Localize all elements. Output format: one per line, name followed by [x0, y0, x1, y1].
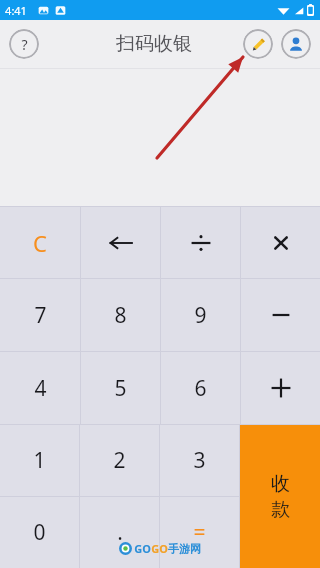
staticText: 4 [34, 374, 47, 403]
button[interactable]: Account [281, 29, 311, 59]
staticText: . [117, 518, 123, 547]
staticText: 0 [33, 518, 46, 547]
staticText: = [193, 518, 206, 547]
button[interactable]: . [80, 497, 159, 568]
staticText: C [33, 228, 47, 258]
button[interactable]: 8 [81, 279, 160, 351]
staticText: 扫码收银 [116, 32, 192, 56]
button[interactable]: Minus [241, 279, 320, 351]
button[interactable]: Edit [243, 29, 273, 59]
staticText: 收 款 [271, 472, 290, 522]
staticText: ? [21, 35, 28, 54]
button[interactable]: ? [9, 29, 39, 59]
staticText: 6 [194, 374, 207, 403]
button[interactable]: 3 [160, 425, 239, 496]
button[interactable]: 收 款 [240, 425, 320, 568]
button[interactable]: Divide [161, 207, 240, 278]
button[interactable]: 2 [80, 425, 159, 496]
staticText: 手游网 [168, 542, 201, 556]
staticText: 4:41 [5, 3, 27, 18]
button[interactable]: Plus [241, 352, 320, 424]
button[interactable]: 9 [161, 279, 240, 351]
staticText: 2 [113, 446, 126, 475]
staticText: 1 [33, 446, 46, 475]
button[interactable]: 5 [81, 352, 160, 424]
button[interactable]: 7 [0, 279, 80, 351]
button[interactable]: Backspace [81, 207, 160, 278]
staticText: 7 [34, 301, 47, 330]
button[interactable]: C [0, 207, 80, 278]
button[interactable]: 0 [0, 497, 79, 568]
staticText: GO [134, 541, 151, 556]
button[interactable]: Multiply [241, 207, 320, 278]
staticText: GO [151, 541, 168, 556]
staticText: 5 [114, 374, 127, 403]
button[interactable]: 4 [0, 352, 80, 424]
button[interactable]: = [160, 497, 239, 568]
staticText: 9 [194, 301, 207, 330]
button[interactable]: 1 [0, 425, 79, 496]
staticText: 8 [114, 301, 127, 330]
button[interactable]: 6 [161, 352, 240, 424]
staticText: 3 [193, 446, 206, 475]
